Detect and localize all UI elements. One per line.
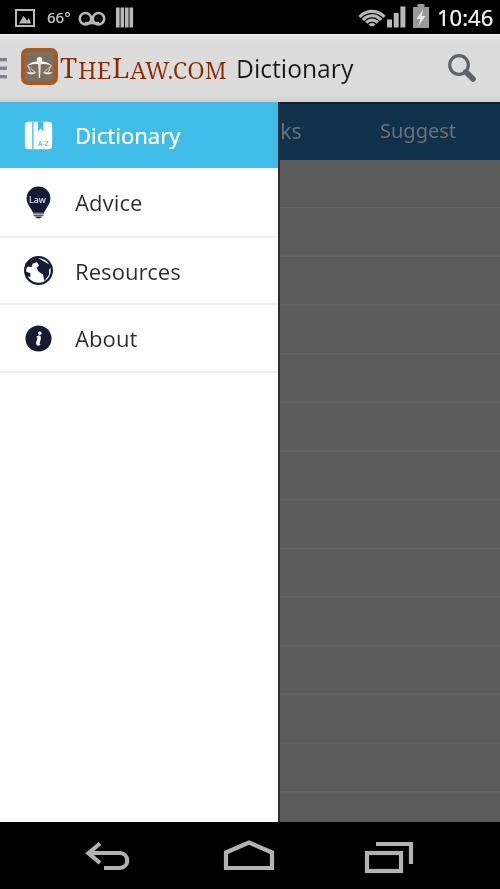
button[interactable]: Back (86, 840, 136, 889)
button[interactable]: Law (0, 168, 280, 236)
staticText: Advice (75, 187, 143, 217)
staticText: HE (78, 54, 112, 86)
staticText: A-Z (38, 139, 49, 149)
staticText: Dictionary (75, 120, 181, 150)
button[interactable]: Home (224, 840, 276, 889)
staticText: 10:46 (437, 2, 494, 32)
button[interactable]: Open navigation drawer (0, 53, 10, 81)
button[interactable]: Search (440, 47, 482, 89)
staticText: About (75, 323, 138, 353)
staticText: T (60, 48, 78, 86)
staticText: Suggest (380, 117, 457, 144)
staticText: L (112, 48, 130, 86)
staticText: Bookmarks (190, 117, 302, 146)
staticText: 66° (47, 7, 71, 27)
staticText: Law (29, 193, 46, 205)
staticText: AW.COM (130, 54, 227, 86)
staticText: Dictionary (236, 52, 354, 85)
staticText: Resources (75, 256, 181, 286)
button[interactable]: About (0, 305, 280, 371)
button[interactable]: Resources (0, 238, 280, 303)
button[interactable]: Recent apps (365, 840, 415, 889)
button[interactable]: A-Z (0, 102, 280, 168)
